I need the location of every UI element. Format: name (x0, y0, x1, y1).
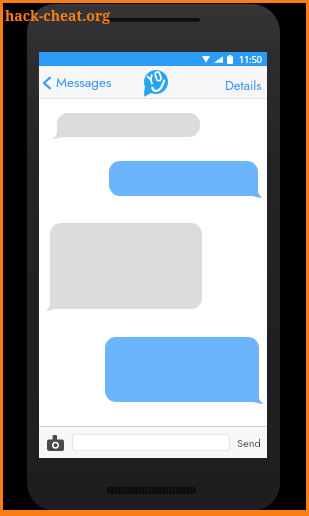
staticText: 11:50 (239, 53, 263, 65)
button[interactable] (72, 434, 230, 451)
staticText: hack-cheat.org (5, 6, 111, 25)
button[interactable]: Camera (47, 435, 64, 451)
button[interactable] (109, 161, 258, 196)
button[interactable] (105, 337, 259, 402)
button[interactable]: Contact profile (144, 70, 168, 96)
button[interactable]: Details (225, 76, 262, 95)
button[interactable]: Messages (43, 73, 112, 93)
button[interactable] (57, 113, 200, 137)
staticText: Messages (56, 73, 112, 93)
button[interactable]: Send (237, 435, 261, 451)
